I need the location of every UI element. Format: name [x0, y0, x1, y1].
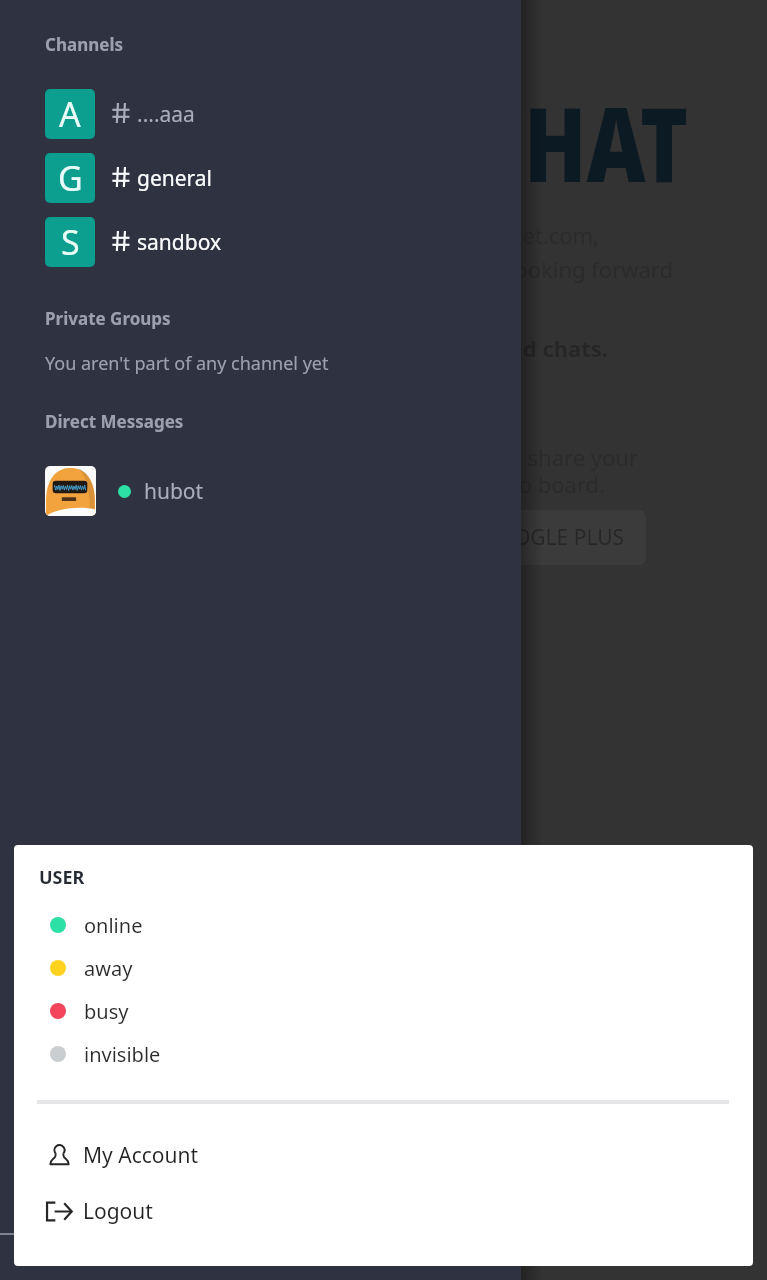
button[interactable]: SIGN IN WITH GOOGLE PLUS [318, 510, 646, 565]
button[interactable]: busy [50, 990, 450, 1032]
staticText: USER [39, 865, 85, 890]
staticText: invisible [84, 1041, 161, 1068]
staticText: Welcome to demo.rocket.com, [284, 220, 599, 250]
button[interactable]: My Account [45, 1127, 565, 1183]
button[interactable]: Logout [45, 1183, 565, 1239]
staticText: SIGN IN WITH GOOGLE PLUS [339, 523, 625, 552]
staticText: away [84, 955, 133, 982]
other: Logout [46, 1202, 72, 1221]
button[interactable]: online [50, 904, 450, 946]
staticText: ....aaa [137, 100, 195, 129]
staticText: A [59, 91, 81, 137]
button[interactable]: hubot [45, 466, 521, 516]
button[interactable]: G [45, 153, 521, 203]
staticText: sandbox [137, 228, 222, 257]
button[interactable]: invisible [50, 1033, 450, 1075]
staticText: general [137, 164, 213, 193]
staticText: Logout [83, 1197, 153, 1226]
staticText: ROCKET.CHAT [134, 73, 688, 212]
staticText: hubot [144, 477, 204, 506]
button[interactable]: Close navigation drawer [521, 0, 767, 1280]
staticText: the chat app. We're looking forward [304, 254, 673, 284]
staticText: busy [84, 998, 129, 1025]
staticText: Private Groups [45, 307, 171, 330]
staticText: Channels [45, 33, 123, 56]
staticText: Chat with your team and share your [266, 442, 638, 472]
button[interactable]: away [50, 947, 450, 989]
button[interactable]: S [45, 217, 521, 267]
staticText: online [84, 912, 143, 939]
staticText: Sign in to join channels and chats. [236, 333, 608, 363]
button[interactable]: A [45, 89, 521, 139]
staticText: ideas to the Trello board. [348, 469, 605, 499]
staticText: Direct Messages [45, 410, 184, 433]
staticText: S [61, 219, 80, 265]
other: My Account [50, 1145, 69, 1165]
staticText: G [58, 155, 83, 201]
staticText: My Account [83, 1141, 199, 1170]
staticText: You aren't part of any channel yet [45, 351, 329, 376]
